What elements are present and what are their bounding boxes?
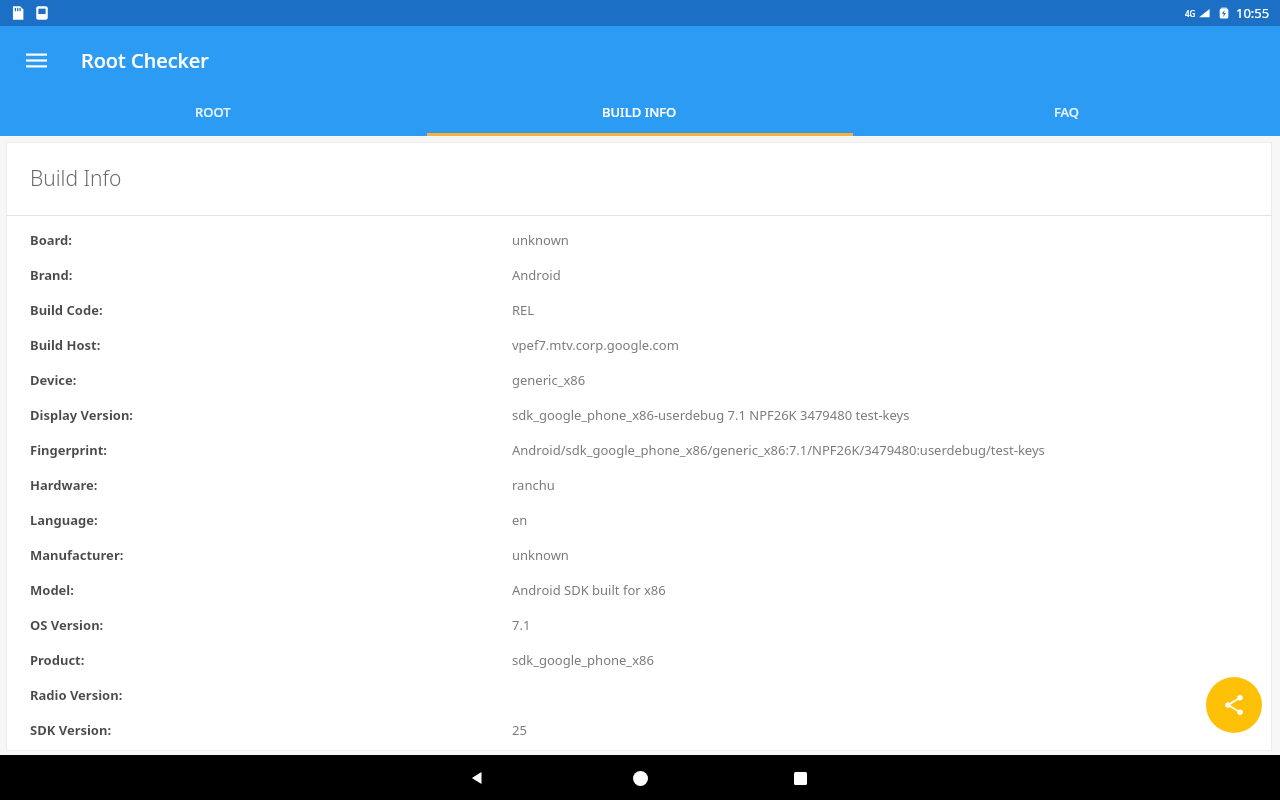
staticText: Device:	[30, 371, 77, 389]
button[interactable]: Recent apps	[778, 756, 822, 800]
staticText: generic_x86	[512, 371, 586, 389]
button[interactable]: Model:	[6, 572, 1272, 607]
staticText: FAQ	[1054, 103, 1080, 121]
button[interactable]: Radio Version:	[6, 677, 1272, 712]
button[interactable]: Share	[1206, 677, 1262, 733]
button[interactable]: FAQ	[853, 94, 1280, 136]
button[interactable]: ROOT	[0, 94, 426, 136]
staticText: SDK Version:	[30, 721, 112, 739]
staticText: Root Checker	[81, 47, 209, 74]
button[interactable]: Product:	[6, 642, 1272, 677]
staticText: ROOT	[195, 103, 231, 121]
button[interactable]: Home	[618, 756, 662, 800]
staticText: en	[512, 511, 528, 529]
button[interactable]: Back	[455, 756, 499, 800]
button[interactable]: Language:	[6, 502, 1272, 537]
staticText: Build Host:	[30, 336, 101, 354]
staticText: Display Version:	[30, 406, 134, 424]
staticText: BUILD INFO	[602, 103, 677, 121]
button[interactable]: BUILD INFO	[426, 94, 853, 136]
staticText: REL	[512, 301, 535, 319]
staticText: 4G	[1185, 8, 1196, 19]
button[interactable]: Hardware:	[6, 467, 1272, 502]
staticText: OS Version:	[30, 616, 104, 634]
button[interactable]: Open navigation menu	[14, 38, 58, 82]
staticText: Language:	[30, 511, 98, 529]
staticText: Board:	[30, 231, 72, 249]
button[interactable]: Manufacturer:	[6, 537, 1272, 572]
button[interactable]: Brand:	[6, 257, 1272, 292]
staticText: Radio Version:	[30, 686, 123, 704]
staticText: Build Info	[30, 164, 122, 193]
button[interactable]: OS Version:	[6, 607, 1272, 642]
button[interactable]: Board:	[6, 222, 1272, 257]
staticText: Android	[512, 266, 561, 284]
staticText: Product:	[30, 651, 85, 669]
staticText: Manufacturer:	[30, 546, 124, 564]
staticText: unknown	[512, 231, 569, 249]
button[interactable]: Fingerprint:	[6, 432, 1272, 467]
button[interactable]: Device:	[6, 362, 1272, 397]
button[interactable]: Build Host:	[6, 327, 1272, 362]
staticText: sdk_google_phone_x86-userdebug 7.1 NPF26…	[512, 406, 910, 424]
staticText: vpef7.mtv.corp.google.com	[512, 336, 679, 354]
staticText: Model:	[30, 581, 74, 599]
staticText: Build Code:	[30, 301, 103, 319]
staticText: unknown	[512, 546, 569, 564]
staticText: Android/sdk_google_phone_x86/generic_x86…	[512, 441, 1045, 459]
staticText: Android SDK built for x86	[512, 581, 666, 599]
button[interactable]: Display Version:	[6, 397, 1272, 432]
button[interactable]: Build Code:	[6, 292, 1272, 327]
staticText: 10:55	[1236, 4, 1270, 22]
staticText: 7.1	[512, 616, 531, 634]
staticText: Fingerprint:	[30, 441, 107, 459]
staticText: Hardware:	[30, 476, 98, 494]
staticText: ranchu	[512, 476, 555, 494]
staticText: Brand:	[30, 266, 73, 284]
button[interactable]: SDK Version:	[6, 712, 1272, 747]
staticText: sdk_google_phone_x86	[512, 651, 654, 669]
staticText: 25	[512, 721, 527, 739]
